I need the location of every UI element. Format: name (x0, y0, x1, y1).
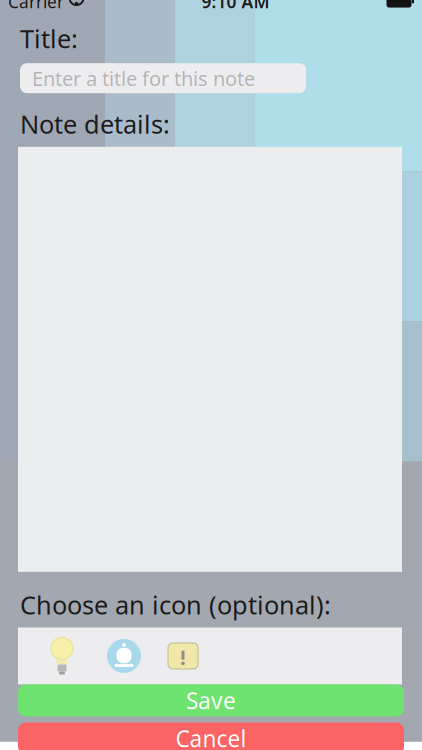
staticText: Enter a title for this note (32, 65, 255, 91)
staticText: Carrier (8, 0, 64, 13)
staticText: Title: (20, 21, 78, 55)
button[interactable]: Warning icon (154, 630, 212, 682)
staticText: 9:10 AM (201, 0, 269, 13)
staticText: Note details: (20, 107, 170, 141)
button[interactable]: Bell icon (94, 630, 154, 682)
button[interactable]: Cancel (18, 722, 404, 750)
button[interactable]: Save (18, 684, 404, 716)
staticText: Cancel (175, 723, 246, 750)
staticText: Save (186, 685, 236, 715)
button[interactable]: Light bulb icon (30, 630, 94, 682)
staticText: Choose an icon (optional): (20, 588, 331, 621)
button[interactable]: Enter a title for this note (20, 63, 306, 93)
